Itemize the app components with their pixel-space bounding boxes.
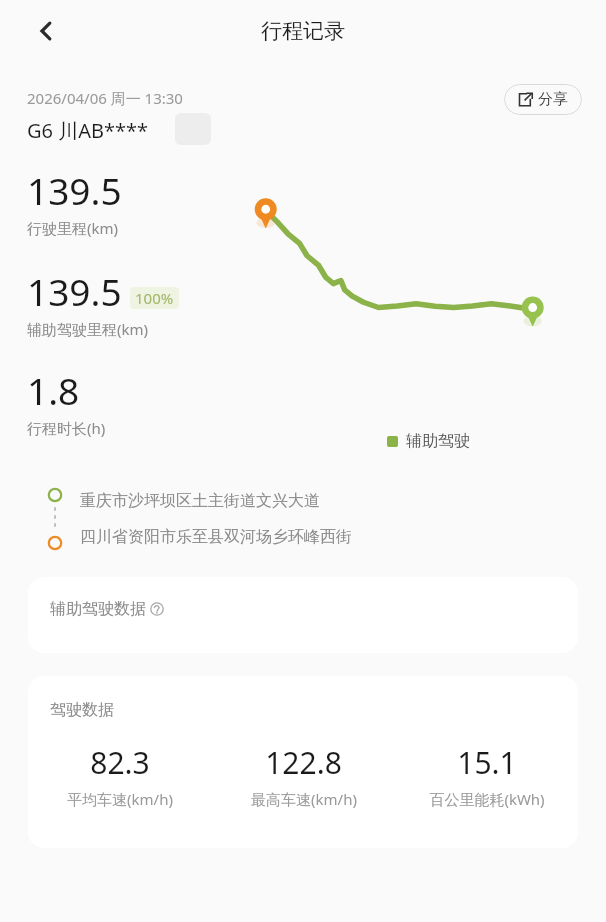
button[interactable]: 四川省资阳市乐至县双河场乡环峰西街 [80, 519, 582, 555]
staticText: 分享 [538, 90, 568, 109]
staticText: 重庆市沙坪坝区土主街道文兴大道 [80, 491, 320, 511]
staticText: 四川省资阳市乐至县双河场乡环峰西街 [80, 527, 352, 547]
staticText: G6 川AB**** [27, 117, 149, 144]
staticText: 82.3 [90, 742, 150, 783]
staticText: 100% [135, 288, 174, 308]
staticText: 1.8 [27, 365, 80, 415]
staticText: 行程记录 [261, 18, 345, 44]
button[interactable]: 辅助驾驶数据 [28, 577, 578, 653]
staticText: 百公里能耗(kWh) [429, 789, 545, 809]
staticText: 平均车速(km/h) [67, 789, 173, 809]
button[interactable]: Back [24, 9, 68, 53]
staticText: 行驶里程(km) [27, 218, 119, 238]
staticText: 辅助驾驶里程(km) [27, 319, 149, 339]
staticText: 139.5 [27, 165, 122, 215]
staticText: 15.1 [457, 742, 517, 783]
button[interactable]: 分享 [504, 84, 582, 115]
staticText: 139.5 [27, 266, 122, 316]
staticText: 2026/04/06 周一 13:30 [27, 88, 183, 108]
staticText: 122.8 [265, 742, 342, 783]
staticText: 辅助驾驶数据 [50, 599, 146, 619]
staticText: 辅助驾驶 [406, 431, 470, 451]
button[interactable]: 重庆市沙坪坝区土主街道文兴大道 [80, 483, 582, 519]
staticText: 行程时长(h) [27, 418, 106, 438]
staticText: 最高车速(km/h) [251, 789, 357, 809]
staticText: 驾驶数据 [50, 700, 114, 720]
